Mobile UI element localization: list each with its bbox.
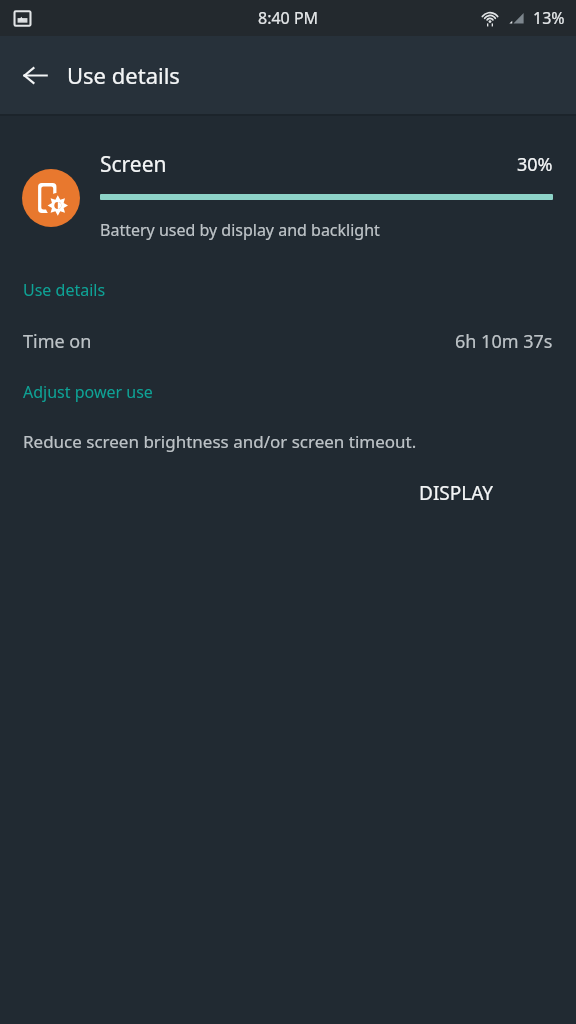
staticText: Screen — [100, 150, 167, 179]
staticText: Reduce screen brightness and/or screen t… — [23, 430, 417, 453]
staticText: 8:40 PM — [258, 7, 319, 29]
staticText: Time on — [23, 329, 92, 354]
staticText: Battery used by display and backlight — [100, 219, 380, 241]
button[interactable]: Back — [11, 51, 59, 99]
staticText: 30% — [517, 152, 553, 177]
button[interactable]: DISPLAY — [405, 471, 507, 515]
staticText: Use details — [67, 60, 180, 90]
staticText: 6h 10m 37s — [455, 329, 553, 354]
staticText: Use details — [23, 279, 106, 301]
staticText: Adjust power use — [23, 381, 153, 403]
staticText: DISPLAY — [419, 480, 493, 506]
staticText: 13% — [533, 7, 565, 29]
